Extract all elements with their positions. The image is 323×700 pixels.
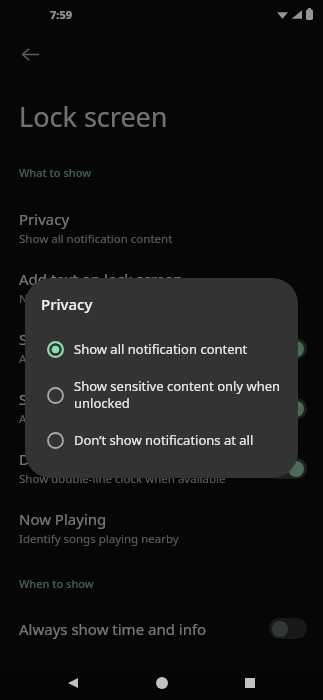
button[interactable]: Don’t show notifications at all: [39, 418, 284, 462]
staticText: Show wallet: [19, 329, 103, 349]
staticText: Lock screen: [19, 98, 168, 135]
staticText: Access controls when locked: [19, 411, 173, 427]
button[interactable]: Privacy: [0, 198, 323, 258]
button[interactable]: Show all notification content: [39, 327, 284, 371]
staticText: When to show: [19, 576, 94, 591]
button[interactable]: [269, 398, 307, 419]
button[interactable]: Add text on lock screen: [0, 258, 323, 318]
button[interactable]: [269, 338, 307, 359]
staticText: Privacy: [19, 209, 70, 229]
button[interactable]: [269, 618, 307, 639]
staticText: Identify songs playing nearby: [19, 531, 179, 547]
button[interactable]: Back: [58, 668, 88, 698]
staticText: Always show time and info: [19, 619, 207, 639]
staticText: Show all notification content: [19, 231, 173, 247]
button[interactable]: Show device controls: [0, 378, 323, 438]
staticText: Show device controls: [19, 389, 167, 409]
staticText: Show sensitive content only when unlocke…: [74, 377, 284, 412]
staticText: Privacy: [41, 294, 93, 314]
staticText: Now Playing: [19, 509, 107, 529]
staticText: Double-line clock: [19, 449, 140, 469]
button[interactable]: Back: [8, 32, 52, 76]
button[interactable]: Double-line clock: [0, 438, 323, 498]
staticText: None: [19, 291, 49, 307]
staticText: Show all notification content: [74, 340, 248, 358]
button[interactable]: Show wallet: [0, 318, 323, 378]
button[interactable]: [269, 458, 307, 479]
staticText: Add text on lock screen: [19, 269, 183, 289]
button[interactable]: Now Playing: [0, 498, 323, 558]
staticText: Don’t show notifications at all: [74, 431, 254, 449]
staticText: What to show: [19, 165, 92, 180]
staticText: Access wallet when locked: [19, 351, 161, 367]
button[interactable]: Recent apps: [235, 668, 265, 698]
staticText: 7:59: [50, 7, 72, 22]
button[interactable]: Show sensitive content only when unlocke…: [39, 371, 284, 418]
button[interactable]: Always show time and info: [0, 607, 323, 650]
staticText: Show double-line clock when available: [19, 471, 226, 487]
button[interactable]: Home: [147, 668, 177, 698]
